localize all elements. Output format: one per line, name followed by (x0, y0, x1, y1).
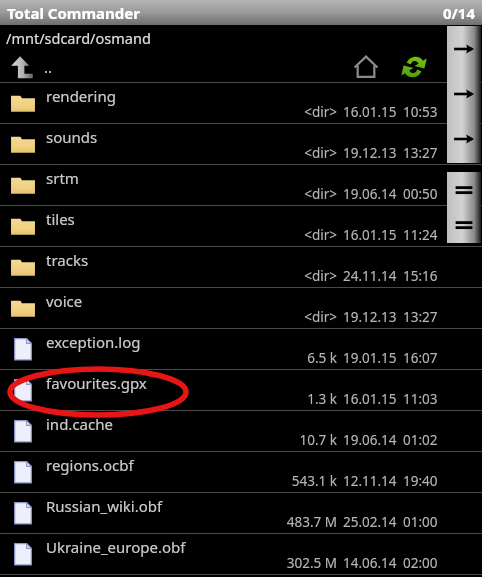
button[interactable]: ind.cache (0, 411, 482, 451)
staticText: Total Commander (7, 3, 140, 23)
button[interactable]: exception.log (0, 329, 482, 369)
button[interactable]: Up one level (0, 51, 44, 82)
staticText: 10:53 (403, 103, 438, 121)
button[interactable]: tracks (0, 247, 482, 287)
staticText: 10.7 k (285, 431, 337, 449)
staticText: 01:00 (403, 513, 438, 531)
staticText: 15:16 (403, 267, 438, 285)
staticText: 19.01.15 (343, 349, 397, 367)
staticText: 0/14 (443, 3, 475, 23)
staticText: 16.01.15 (343, 226, 397, 244)
staticText: 6.5 k (285, 349, 337, 367)
staticText: 543.1 k (285, 472, 337, 490)
button[interactable]: favourites.gpx (0, 370, 482, 410)
staticText: 19.12.13 (343, 144, 397, 162)
staticText: exception.log (46, 332, 141, 352)
button[interactable]: Move right (447, 26, 481, 71)
button[interactable]: tiles (0, 206, 482, 246)
staticText: <dir> (285, 308, 337, 326)
staticText: 11:03 (403, 390, 438, 408)
staticText: 14.06.14 (343, 554, 397, 572)
staticText: srtm (46, 168, 79, 188)
staticText: rendering (46, 86, 116, 106)
button[interactable]: Ukraine_europe.obf (0, 534, 482, 574)
staticText: 16.01.15 (343, 390, 397, 408)
staticText: 19:40 (403, 472, 438, 490)
staticText: 1.3 k (285, 390, 337, 408)
staticText: ind.cache (46, 414, 113, 434)
button[interactable]: Equal (447, 207, 481, 242)
staticText: 19.06.14 (343, 431, 397, 449)
staticText: 13:27 (403, 308, 438, 326)
button[interactable]: Russian_wiki.obf (0, 493, 482, 533)
button[interactable]: Refresh (392, 51, 436, 82)
staticText: 01:02 (403, 431, 438, 449)
staticText: 13:27 (403, 144, 438, 162)
button[interactable]: rendering (0, 83, 482, 123)
staticText: <dir> (285, 267, 337, 285)
button[interactable]: Equal (447, 172, 481, 207)
staticText: .. (44, 57, 53, 77)
staticText: <dir> (285, 103, 337, 121)
staticText: 00:50 (403, 185, 438, 203)
staticText: 11:24 (403, 226, 438, 244)
button[interactable]: voice (0, 288, 482, 328)
staticText: 16:07 (403, 349, 438, 367)
staticText: 02:00 (403, 554, 438, 572)
button[interactable]: regions.ocbf (0, 452, 482, 492)
staticText: 25.02.14 (343, 513, 397, 531)
staticText: 24.11.14 (343, 267, 397, 285)
staticText: <dir> (285, 144, 337, 162)
staticText: regions.ocbf (46, 455, 134, 475)
staticText: 12.11.14 (343, 472, 397, 490)
staticText: sounds (46, 127, 98, 147)
staticText: 302.5 M (285, 554, 337, 572)
staticText: Russian_wiki.obf (46, 496, 163, 516)
button[interactable]: sounds (0, 124, 482, 164)
button[interactable]: Home (340, 51, 392, 82)
staticText: tiles (46, 209, 75, 229)
staticText: favourites.gpx (46, 373, 147, 393)
staticText: tracks (46, 250, 89, 270)
staticText: <dir> (285, 226, 337, 244)
staticText: voice (46, 291, 83, 311)
staticText: 16.01.15 (343, 103, 397, 121)
staticText: 483.7 M (285, 513, 337, 531)
staticText: 19.06.14 (343, 185, 397, 203)
staticText: /mnt/sdcard/osmand (6, 28, 151, 48)
staticText: Ukraine_europe.obf (46, 537, 186, 557)
staticText: <dir> (285, 185, 337, 203)
button[interactable]: Move right (447, 71, 481, 116)
button[interactable]: Move right (447, 116, 481, 161)
staticText: 19.12.13 (343, 308, 397, 326)
button[interactable]: srtm (0, 165, 482, 205)
